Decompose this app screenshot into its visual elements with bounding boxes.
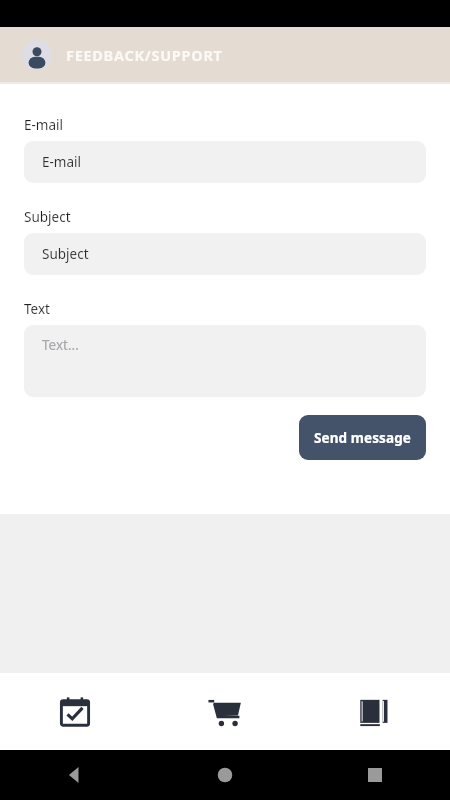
other: Back [67, 767, 83, 783]
staticText: Subject [42, 245, 89, 263]
staticText: Text... [42, 336, 79, 354]
button[interactable]: Text... [24, 325, 426, 397]
button[interactable]: E-mail [24, 141, 426, 183]
button[interactable]: Schedule [0, 673, 150, 750]
staticText: E-mail [42, 153, 82, 171]
button[interactable]: Send message [299, 415, 426, 460]
button[interactable]: Cart [150, 673, 300, 750]
staticText: FEEDBACK/SUPPORT [66, 45, 223, 65]
button[interactable]: Subject [24, 233, 426, 275]
staticText: Send message [314, 429, 411, 447]
staticText: E-mail [24, 116, 64, 134]
staticText: Subject [24, 208, 71, 226]
other: Home [217, 767, 233, 783]
button[interactable]: Library [300, 673, 450, 750]
staticText: Text [24, 300, 50, 318]
